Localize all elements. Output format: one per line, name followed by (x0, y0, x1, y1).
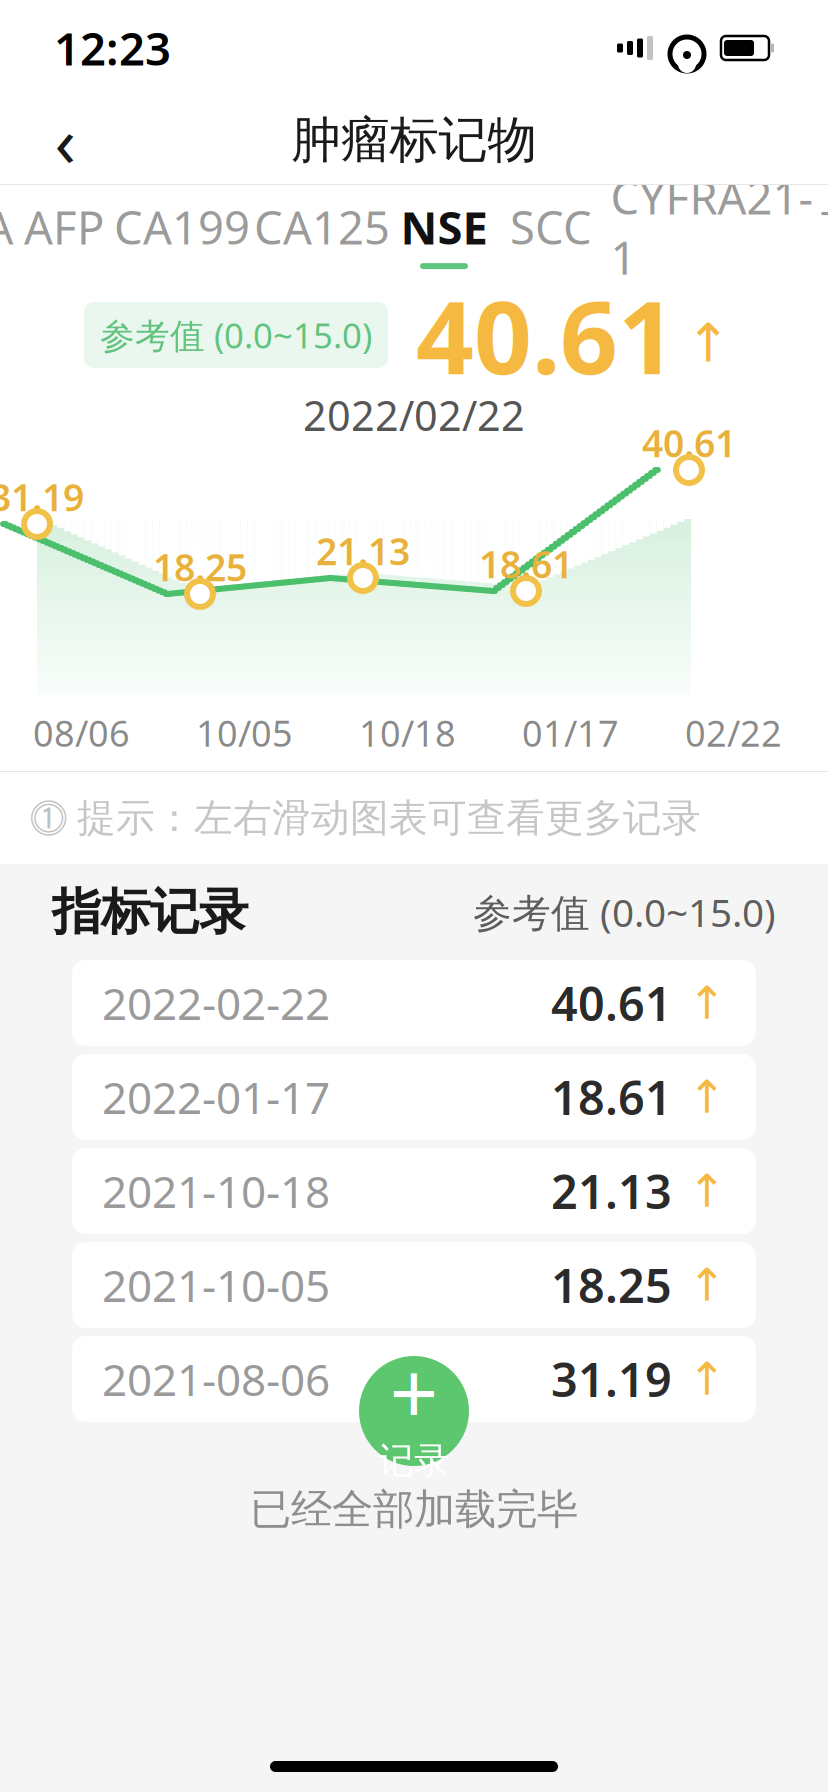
button[interactable]: CYFRA21-1 (606, 185, 818, 281)
staticText: 10/18 (359, 709, 456, 757)
staticText: 2022-02-22 (102, 974, 330, 1032)
staticText: 18.25 (551, 1254, 672, 1316)
staticText: + (389, 1335, 438, 1448)
staticText: ↑ (686, 313, 731, 373)
button[interactable]: CA199 (112, 185, 252, 281)
staticText: ↑ (688, 1071, 726, 1123)
staticText: A (0, 197, 13, 257)
staticText: 2021-10-18 (102, 1162, 330, 1220)
staticText: 2022-01-17 (102, 1068, 330, 1126)
staticText: ↑ (688, 977, 726, 1029)
button[interactable]: Back (20, 96, 110, 184)
staticText: CA125 (254, 197, 390, 257)
staticText: 40.61 (642, 418, 736, 468)
staticText: NSE (400, 197, 487, 257)
button[interactable]: 2021-08-06 (72, 1336, 756, 1422)
staticText: ↑ (688, 1165, 726, 1217)
staticText: 40.61 (416, 268, 676, 402)
staticText: 18.61 (479, 539, 573, 589)
staticText: T-PS (821, 197, 828, 257)
staticText: SCC (510, 197, 592, 257)
button[interactable]: A (0, 185, 16, 281)
staticText: 参考值 (0.0~15.0) (100, 312, 372, 358)
staticText: 提示：左右滑动图表可查看更多记录 (77, 794, 701, 842)
staticText: 12:23 (54, 18, 171, 78)
button[interactable]: 2021-10-18 (72, 1148, 756, 1234)
staticText: 10/05 (196, 709, 293, 757)
button[interactable]: T-PS (818, 185, 828, 281)
staticText: 参考值 (0.0~15.0) (473, 886, 776, 938)
staticText: 40.61 (551, 972, 672, 1034)
button[interactable]: 2021-10-05 (72, 1242, 756, 1328)
staticText: AFP (24, 197, 104, 257)
staticText: 01/17 (522, 709, 619, 757)
button[interactable]: AFP (16, 185, 112, 281)
staticText: 21.13 (316, 526, 410, 576)
button[interactable]: CA125 (252, 185, 392, 281)
staticText: CYFRA21-1 (610, 167, 813, 287)
button[interactable]: 2022-02-22 (72, 960, 756, 1046)
staticText: 2021-10-05 (102, 1256, 330, 1314)
staticText: ↑ (688, 1353, 726, 1405)
staticText: CA199 (114, 197, 250, 257)
staticText: 指标记录 (52, 882, 248, 942)
button[interactable]: SCC (496, 185, 606, 281)
button[interactable]: 2022-01-17 (72, 1054, 756, 1140)
staticText: 2022/02/22 (303, 388, 525, 442)
staticText: 31.19 (551, 1348, 672, 1410)
staticText: ‹ (54, 94, 75, 186)
staticText: 已经全部加载完毕 (250, 1484, 578, 1535)
staticText: 记录 (378, 1439, 450, 1483)
staticText: 31.19 (0, 472, 84, 522)
staticText: ⓵ (30, 800, 67, 836)
staticText: 21.13 (551, 1160, 672, 1222)
button[interactable]: 添加记录 (359, 1356, 469, 1466)
staticText: 18.25 (153, 542, 247, 592)
staticText: 02/22 (685, 709, 782, 757)
staticText: 08/06 (33, 709, 130, 757)
staticText: ↑ (688, 1259, 726, 1311)
staticText: 2021-08-06 (102, 1350, 330, 1408)
staticText: 18.61 (551, 1066, 672, 1128)
button[interactable]: NSE (392, 185, 496, 281)
staticText: 肿瘤标记物 (291, 110, 536, 170)
